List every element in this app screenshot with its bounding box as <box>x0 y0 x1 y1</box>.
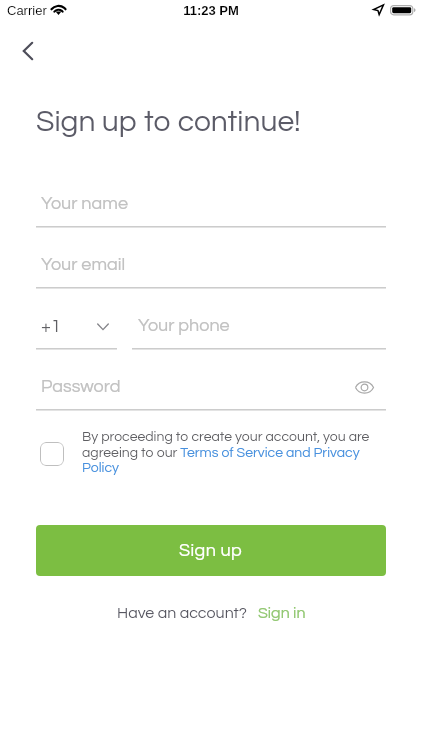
button[interactable]: Sign in <box>258 605 306 621</box>
staticText: Your name <box>41 194 128 213</box>
button[interactable]: Password <box>36 376 386 411</box>
button[interactable]: +1 <box>36 315 117 350</box>
staticText: Carrier <box>7 3 47 18</box>
staticText: Have an account? <box>117 605 247 621</box>
button[interactable]: Sign up <box>36 525 386 576</box>
staticText: By proceeding to create your account, yo… <box>82 430 372 475</box>
button[interactable]: Back <box>8 31 48 71</box>
staticText: +1 <box>41 317 61 336</box>
staticText: Sign in <box>258 605 306 621</box>
button[interactable]: Show password <box>347 370 382 405</box>
button[interactable]: Agree to terms and conditions <box>40 442 64 466</box>
button[interactable]: Your email <box>36 254 386 289</box>
staticText: Your email <box>41 255 126 274</box>
staticText: 11:23 PM <box>0 3 422 18</box>
staticText: Your phone <box>138 316 230 335</box>
button[interactable]: Your name <box>36 193 386 228</box>
button[interactable]: Your phone <box>132 315 386 350</box>
staticText: Sign up <box>179 541 243 560</box>
staticText: Password <box>41 377 121 396</box>
staticText: Sign up to continue! <box>36 106 301 137</box>
